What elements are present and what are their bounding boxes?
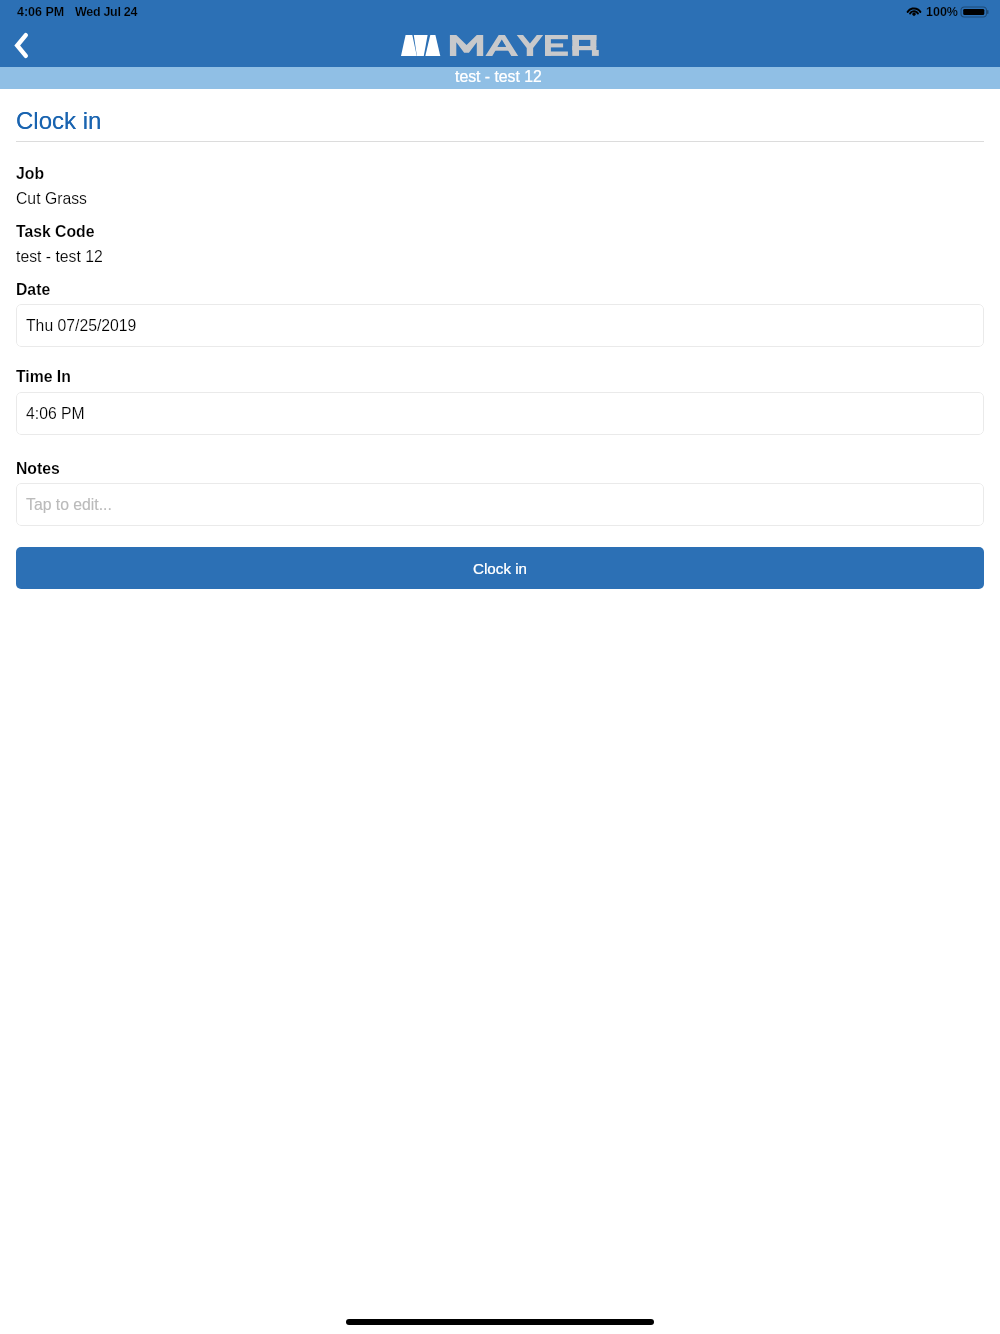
staticText: Job <box>16 165 45 183</box>
staticText: Time In <box>16 368 71 386</box>
staticText: Clock in <box>16 107 102 134</box>
staticText: Cut Grass <box>16 190 87 208</box>
button[interactable]: Back <box>0 24 42 67</box>
staticText: test - test 12 <box>16 248 103 266</box>
staticText: Notes <box>16 460 60 478</box>
staticText: Date <box>16 281 51 299</box>
staticText: 100% <box>926 5 958 19</box>
staticText: Task Code <box>16 223 95 241</box>
staticText: Clock in <box>16 107 102 134</box>
button[interactable]: Tap to edit... <box>16 483 984 526</box>
staticText: 4:06 PM <box>17 5 65 19</box>
button[interactable]: Clock in <box>16 547 984 589</box>
staticText: Clock in <box>473 560 528 577</box>
staticText: test - test 12 <box>455 68 542 86</box>
staticText: 4:06 PM <box>26 405 85 423</box>
staticText: Thu 07/25/2019 <box>26 317 137 335</box>
button[interactable]: 4:06 PM <box>16 392 984 435</box>
button[interactable]: Thu 07/25/2019 <box>16 304 984 347</box>
staticText: Wed Jul 24 <box>75 5 138 19</box>
staticText: Tap to edit... <box>26 496 112 514</box>
